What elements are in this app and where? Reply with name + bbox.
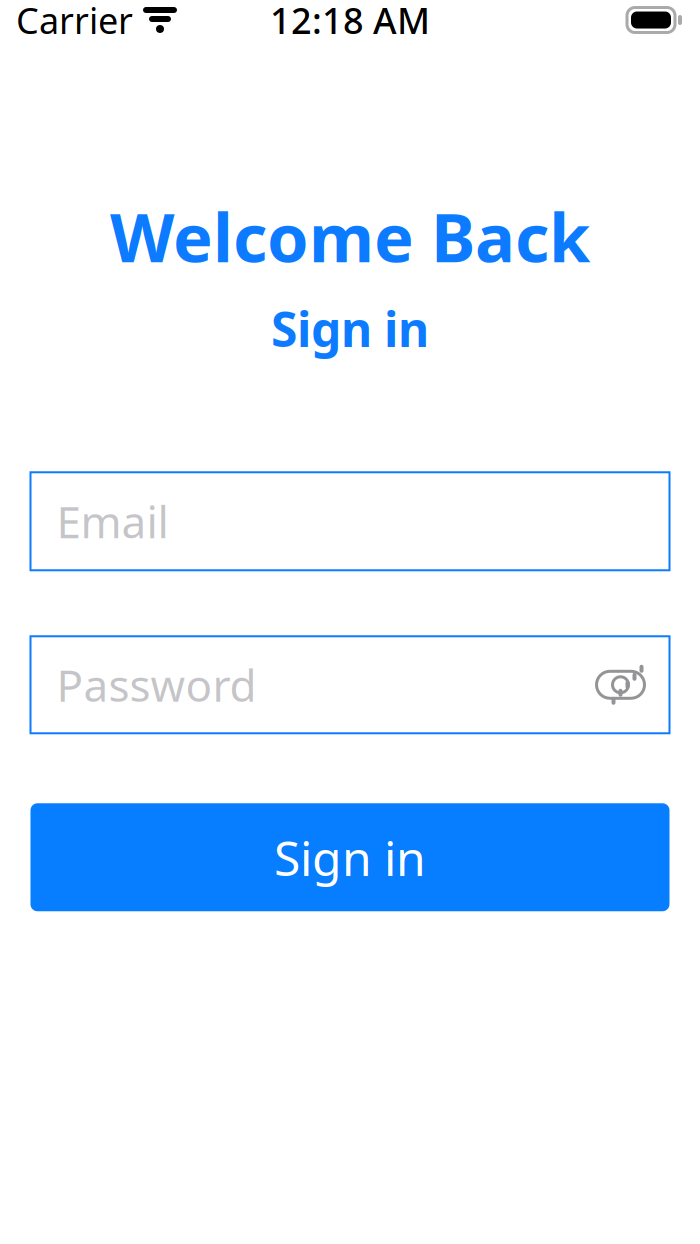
button[interactable]: Show password <box>589 654 651 716</box>
staticText: Sign in <box>274 825 426 889</box>
button[interactable]: Email <box>30 472 669 570</box>
staticText: Email <box>56 492 168 550</box>
staticText: Password <box>56 656 256 714</box>
staticText: 12:18 AM <box>270 0 430 44</box>
staticText: Carrier <box>16 0 133 44</box>
staticText: Sign in <box>271 296 429 360</box>
button[interactable]: Sign in <box>30 803 669 911</box>
staticText: Welcome Back <box>110 192 590 280</box>
